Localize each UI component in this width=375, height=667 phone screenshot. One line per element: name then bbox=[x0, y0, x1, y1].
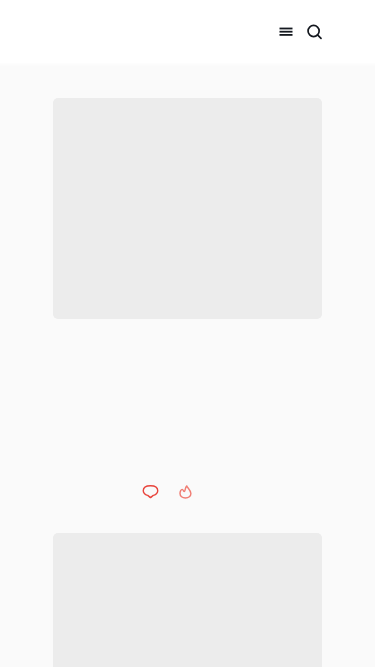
button[interactable]: Comment bbox=[136, 478, 165, 507]
button[interactable]: Menu bbox=[266, 8, 306, 48]
button[interactable]: Search bbox=[294, 11, 334, 51]
button[interactable]: Trending bbox=[174, 480, 203, 509]
